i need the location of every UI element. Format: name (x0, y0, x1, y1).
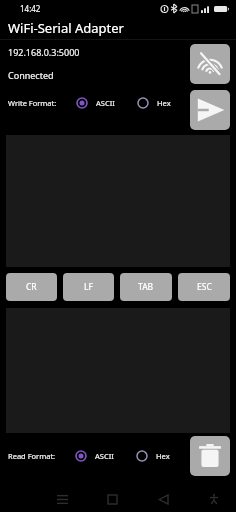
staticText: Connected (8, 69, 54, 81)
button[interactable]: TAB (120, 273, 172, 301)
button[interactable]: Hex (136, 95, 172, 111)
staticText: ASCII (96, 98, 115, 108)
button[interactable]: Send (190, 90, 230, 130)
button[interactable]: Clear (190, 436, 230, 476)
button[interactable]: LF (63, 273, 114, 301)
staticText: 14:42 (20, 3, 41, 14)
staticText: ESC (197, 281, 212, 293)
button[interactable]: Accessibility (202, 487, 226, 511)
staticText: Hex (156, 451, 170, 461)
staticText: LF (84, 281, 93, 293)
staticText: WiFi-Serial Adapter (8, 19, 124, 37)
staticText: ASCII (95, 451, 114, 461)
button[interactable]: CR (6, 273, 57, 301)
staticText: CR (26, 281, 37, 293)
button[interactable]: Menu (50, 487, 74, 511)
button[interactable]: ASCII (75, 95, 116, 111)
staticText: 192.168.0.3:5000 (8, 46, 80, 58)
button[interactable]: Home (100, 487, 124, 511)
button[interactable]: Hex (135, 448, 171, 464)
staticText: TAB (138, 281, 154, 293)
button[interactable]: Back (151, 487, 175, 511)
staticText: Read Format: (8, 451, 56, 461)
staticText: Write Format: (8, 98, 57, 108)
button[interactable]: ASCII (74, 448, 115, 464)
button[interactable]: ESC (178, 273, 230, 301)
button[interactable]: Disconnect (190, 44, 230, 84)
staticText: Hex (157, 98, 171, 108)
